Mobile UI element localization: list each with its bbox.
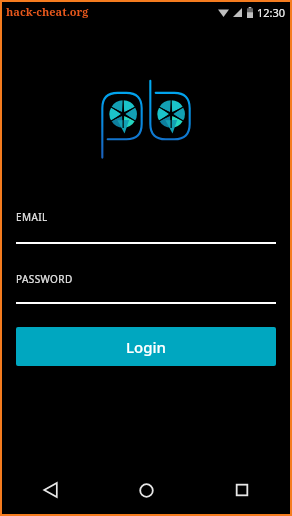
button[interactable]: Home — [98, 466, 194, 514]
staticText: hack-cheat.org — [6, 4, 89, 19]
staticText: EMAIL — [16, 210, 290, 224]
staticText: Login — [126, 337, 166, 357]
button[interactable]: Recent apps — [194, 466, 290, 514]
button[interactable]: Login — [16, 327, 276, 366]
button[interactable]: Back — [2, 466, 98, 514]
staticText: PASSWORD — [16, 272, 290, 286]
staticText: 12:30 — [257, 5, 286, 20]
